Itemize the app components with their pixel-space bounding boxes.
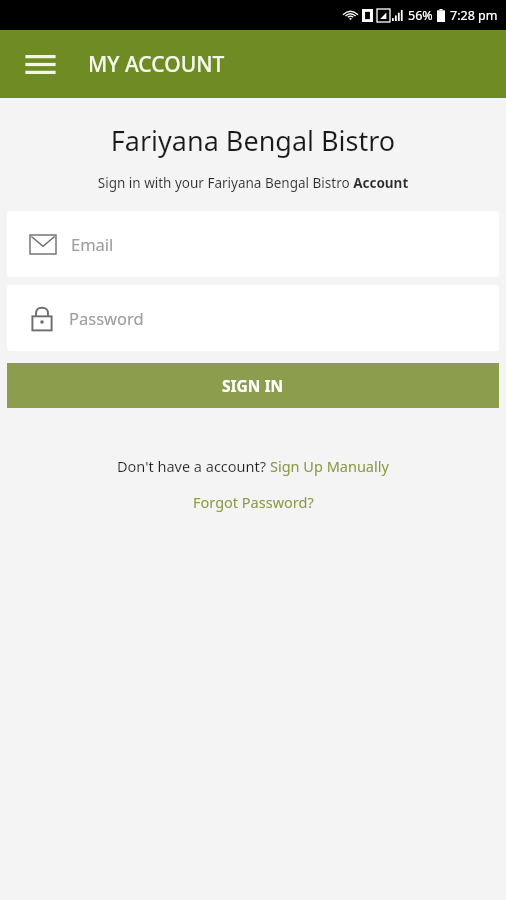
staticText: Sign Up Manually [270,456,389,476]
button[interactable]: Sign Up Manually [270,456,389,476]
staticText: Email [71,233,114,255]
button[interactable]: Forgot Password? [193,492,314,512]
staticText: Forgot Password? [193,492,314,512]
button[interactable]: Password input [7,285,499,351]
staticText: 7:28 pm [450,7,498,24]
staticText: SIGN IN [222,375,284,396]
staticText: Password [69,307,144,329]
staticText: Sign in with your Fariyana Bengal Bistro… [0,174,506,192]
staticText: Fariyana Bengal Bistro [0,122,506,159]
button[interactable]: Email input [7,211,499,277]
staticText: Don't have a account? [117,456,270,476]
button[interactable]: Open navigation menu [14,38,66,90]
staticText: 56% [408,7,433,24]
button[interactable]: SIGN IN [7,363,499,408]
staticText: MY ACCOUNT [88,50,225,79]
